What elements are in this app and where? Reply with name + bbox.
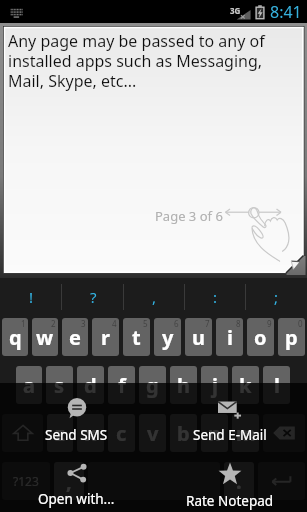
button[interactable]: , — [124, 278, 185, 316]
staticText: d — [84, 372, 97, 399]
button[interactable]: ? — [62, 278, 124, 316]
staticText: z — [55, 420, 65, 447]
button[interactable]: u — [185, 318, 212, 356]
staticText: f — [118, 372, 126, 399]
staticText: 8 — [236, 318, 241, 329]
button[interactable]: v — [139, 414, 166, 452]
staticText: 1 — [21, 318, 26, 329]
button[interactable]: n — [201, 414, 228, 452]
staticText: Send E-Mail — [193, 426, 267, 444]
button[interactable]: l — [263, 366, 290, 404]
staticText: 6 — [174, 318, 179, 329]
button[interactable]: ; — [246, 278, 307, 316]
staticText: t — [132, 324, 141, 351]
button[interactable]: x — [77, 414, 104, 452]
button[interactable]: h — [170, 366, 197, 404]
button[interactable]: a — [16, 366, 42, 404]
button[interactable]: s — [46, 366, 73, 404]
staticText: ! — [29, 287, 34, 307]
staticText: 4 — [112, 318, 117, 329]
button[interactable]: i — [216, 318, 243, 356]
button[interactable]: b — [170, 414, 197, 452]
button[interactable]: shift — [2, 414, 43, 452]
button[interactable]: Space — [88, 462, 220, 500]
staticText: a — [23, 372, 35, 399]
button[interactable]: ?123 — [2, 462, 50, 500]
staticText: i — [227, 324, 233, 351]
staticText: l — [274, 372, 280, 399]
staticText: r — [101, 324, 110, 351]
staticText: b — [177, 420, 190, 447]
staticText: y — [162, 324, 174, 351]
staticText: ?123 — [13, 473, 39, 489]
staticText: , — [66, 468, 72, 495]
staticText: 2 — [51, 318, 56, 329]
button[interactable]: Open with... — [0, 447, 153, 512]
button[interactable]: Send E-Mail — [153, 383, 307, 447]
button[interactable]: g — [139, 366, 166, 404]
button[interactable]: y — [154, 318, 181, 356]
button[interactable]: e — [62, 318, 88, 356]
staticText: v — [147, 420, 159, 447]
button[interactable]: z — [47, 414, 73, 452]
staticText: 9 — [267, 318, 272, 329]
staticText: : — [213, 287, 218, 307]
staticText: Send SMS — [45, 426, 108, 444]
staticText: p — [285, 324, 298, 351]
staticText: , — [152, 287, 157, 307]
button[interactable]: : — [185, 278, 246, 316]
staticText: k — [239, 372, 252, 399]
staticText: o — [254, 324, 267, 351]
staticText: 5 — [143, 318, 148, 329]
button[interactable]: c — [108, 414, 135, 452]
staticText: w — [36, 324, 54, 351]
staticText: Any page may be passed to any of install… — [8, 30, 292, 91]
other: Input method — [10, 7, 23, 17]
staticText: n — [208, 420, 221, 447]
staticText: h — [177, 372, 190, 399]
staticText: c — [116, 420, 127, 447]
staticText: e — [69, 324, 81, 351]
button[interactable]: f — [108, 366, 135, 404]
button[interactable]: Rate Notepad — [153, 447, 307, 512]
button[interactable]: delete — [263, 414, 305, 452]
staticText: Page 3 of 6 — [155, 207, 223, 225]
staticText: s — [54, 372, 65, 399]
staticText: u — [192, 324, 205, 351]
button[interactable]: . — [224, 462, 254, 500]
staticText: q — [9, 324, 22, 351]
staticText: 3G — [230, 5, 241, 16]
button[interactable]: ! — [0, 278, 62, 316]
staticText: ? — [90, 287, 97, 307]
button[interactable]: o — [247, 318, 274, 356]
staticText: j — [212, 372, 218, 399]
staticText: Open with... — [38, 490, 115, 508]
button[interactable]: , — [54, 462, 84, 500]
button[interactable]: m — [232, 414, 259, 452]
button[interactable]: q — [2, 318, 28, 356]
button[interactable]: p — [278, 318, 305, 356]
staticText: ; — [274, 287, 279, 307]
button[interactable]: d — [77, 366, 104, 404]
staticText: . — [236, 468, 242, 495]
button[interactable]: k — [232, 366, 259, 404]
staticText: x — [85, 420, 97, 447]
button[interactable]: t — [123, 318, 150, 356]
button[interactable]: Send SMS — [0, 383, 153, 447]
button[interactable]: r — [92, 318, 119, 356]
staticText: 7 — [205, 318, 210, 329]
staticText: 8:41 — [270, 1, 302, 23]
staticText: m — [236, 420, 256, 447]
staticText: Rate Notepad — [186, 492, 274, 510]
staticText: g — [146, 372, 159, 399]
button[interactable]: w — [32, 318, 58, 356]
button[interactable]: j — [201, 366, 228, 404]
button[interactable]: enter — [258, 462, 305, 500]
staticText: 3 — [81, 318, 86, 329]
staticText: 0 — [298, 318, 303, 329]
